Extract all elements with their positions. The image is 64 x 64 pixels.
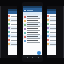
button[interactable]: Inbox screenshot xyxy=(22,2,43,62)
button[interactable] xyxy=(23,39,42,43)
button[interactable]: Phone screenshot one xyxy=(0,6,17,58)
button[interactable] xyxy=(47,38,56,42)
button[interactable]: Phone screenshot three xyxy=(47,6,64,58)
button[interactable]: Tab xyxy=(31,56,34,58)
button[interactable]: Tab xyxy=(37,56,40,58)
button[interactable] xyxy=(47,14,56,18)
button[interactable] xyxy=(23,15,42,19)
button[interactable] xyxy=(8,18,17,22)
button[interactable] xyxy=(23,35,42,39)
button[interactable] xyxy=(8,38,17,42)
button[interactable] xyxy=(8,42,17,46)
button[interactable] xyxy=(47,22,56,26)
button[interactable] xyxy=(47,30,56,34)
button[interactable] xyxy=(8,34,17,38)
button[interactable] xyxy=(47,26,56,30)
button[interactable] xyxy=(8,22,17,26)
button[interactable] xyxy=(8,26,17,30)
button[interactable]: Compose xyxy=(37,51,41,55)
button[interactable] xyxy=(47,18,56,22)
button[interactable]: Tab xyxy=(26,56,29,58)
button[interactable] xyxy=(23,19,42,23)
button[interactable] xyxy=(8,30,17,34)
button[interactable] xyxy=(47,42,56,46)
button[interactable] xyxy=(23,23,42,27)
button[interactable] xyxy=(23,27,42,31)
button[interactable] xyxy=(47,34,56,38)
button[interactable] xyxy=(23,31,42,35)
button[interactable] xyxy=(8,14,17,18)
